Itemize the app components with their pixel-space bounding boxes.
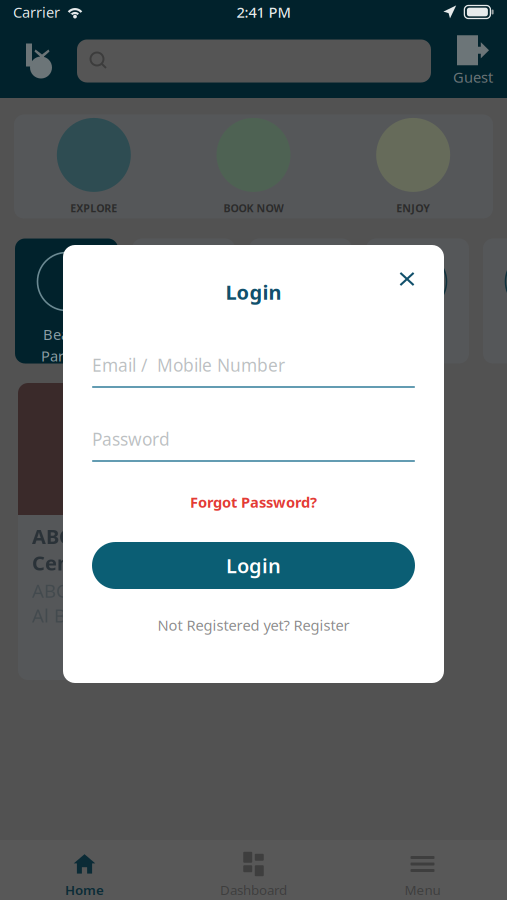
button[interactable]: Login (92, 542, 415, 589)
staticText: Forgot Password? (190, 492, 317, 512)
button[interactable]: Not Registered yet? Register (63, 613, 444, 637)
staticText: Beauty (43, 324, 90, 344)
staticText: Parlour (41, 346, 92, 365)
button[interactable]: Menu (338, 840, 507, 900)
staticText: Password (92, 428, 170, 451)
button[interactable]: EXPLORE (14, 114, 174, 218)
staticText: Login (226, 552, 281, 579)
staticText: Guest (453, 67, 493, 87)
staticText: Email / Mobile Number (92, 354, 285, 377)
staticText: Menu (404, 881, 440, 899)
button[interactable]: BOOK NOW (174, 114, 333, 218)
button[interactable]: ENJOY (333, 114, 493, 218)
button[interactable]: App logo (21, 28, 57, 94)
staticText: BOOK NOW (223, 201, 283, 215)
staticText: 2:41 PM (236, 2, 290, 22)
staticText: ENJOY (396, 201, 430, 215)
button[interactable]: Home (0, 840, 169, 900)
staticText: ABC Al Bi (32, 578, 71, 628)
button[interactable]: Hair (132, 238, 235, 363)
staticText: Carrier (13, 2, 60, 22)
button[interactable]: Nail (249, 238, 352, 363)
staticText: ABC Center (32, 523, 100, 576)
button[interactable]: Beard (366, 238, 469, 363)
staticText: Not Registered yet? Register (157, 615, 349, 635)
staticText: EXPLORE (70, 201, 117, 215)
button[interactable]: Beauty (15, 238, 118, 363)
staticText: Home (65, 881, 104, 899)
staticText: Dashboard (220, 881, 287, 899)
staticText: Login (225, 279, 281, 305)
button[interactable]: Dashboard (169, 840, 338, 900)
button[interactable]: Spa (483, 238, 507, 363)
button[interactable]: Forgot Password? (63, 490, 444, 514)
button[interactable]: Close (387, 272, 427, 312)
staticText: Styling (160, 346, 206, 365)
button[interactable]: ABC Center (18, 383, 240, 680)
button[interactable]: Guest, sign in (451, 28, 495, 94)
